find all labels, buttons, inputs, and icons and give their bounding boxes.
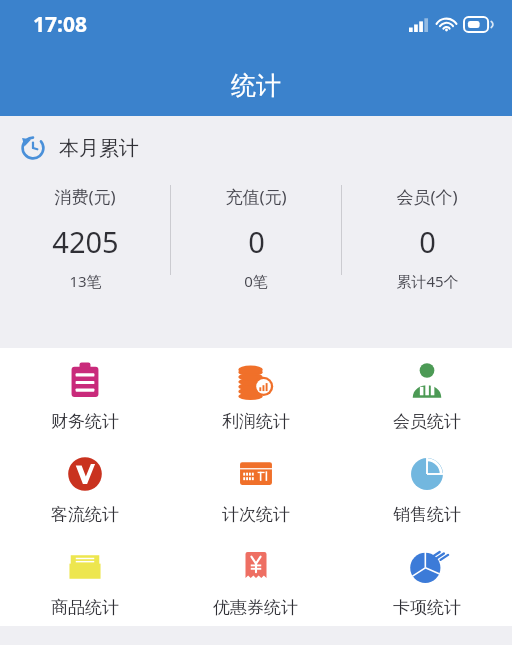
staticText: 累计45个	[396, 271, 459, 291]
staticText: 财务统计	[51, 411, 119, 432]
staticText: 消费(元)	[54, 185, 116, 208]
staticText: 0	[248, 222, 265, 261]
button[interactable]: 充值(元)	[171, 185, 341, 295]
button[interactable]: 会员统计	[341, 348, 512, 441]
staticText: 销售统计	[393, 504, 461, 525]
button[interactable]: 卡项统计	[341, 534, 512, 626]
staticText: 会员(个)	[396, 185, 458, 208]
other: History	[20, 135, 46, 161]
button[interactable]: 利润统计	[170, 348, 341, 441]
staticText: 0笔	[244, 271, 268, 291]
staticText: 计次统计	[222, 504, 290, 525]
staticText: 4205	[52, 222, 119, 261]
staticText: 会员统计	[393, 411, 461, 432]
staticText: 卡项统计	[393, 597, 461, 618]
staticText: 客流统计	[51, 504, 119, 525]
button[interactable]: 计次统计	[170, 441, 341, 534]
staticText: 利润统计	[222, 411, 290, 432]
button[interactable]: 商品统计	[0, 534, 170, 626]
staticText: 商品统计	[51, 597, 119, 618]
staticText: 13笔	[69, 271, 102, 291]
button[interactable]: 销售统计	[341, 441, 512, 534]
staticText: 统计	[231, 70, 281, 101]
button[interactable]: 消费(元)	[0, 185, 170, 295]
button[interactable]: 财务统计	[0, 348, 170, 441]
staticText: 17:08	[33, 10, 87, 39]
button[interactable]: 优惠券统计	[170, 534, 341, 626]
staticText: 优惠券统计	[213, 597, 298, 618]
staticText: 0	[419, 222, 436, 261]
staticText: 本月累计	[59, 136, 139, 161]
button[interactable]: 客流统计	[0, 441, 170, 534]
staticText: 充值(元)	[225, 185, 287, 208]
button[interactable]: 会员(个)	[342, 185, 512, 295]
